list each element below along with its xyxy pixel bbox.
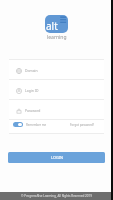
button[interactable]: Remember me — [9, 119, 51, 130]
staticText: alt — [46, 19, 58, 33]
staticText: Domain — [25, 68, 38, 73]
button[interactable]: Login ID — [9, 80, 104, 100]
button[interactable]: Forgot password? — [67, 120, 104, 130]
button[interactable]: Domain — [9, 60, 104, 80]
staticText: LOGIN — [51, 155, 63, 160]
staticText: Login ID — [25, 88, 39, 93]
staticText: learning — [47, 34, 67, 41]
staticText: Password — [25, 108, 41, 113]
button[interactable]: LOGIN — [8, 152, 105, 163]
staticText: Remember me — [26, 123, 47, 127]
staticText: © ProgressRise Learning, All Rights Rese… — [21, 194, 92, 198]
button[interactable]: Password — [9, 100, 104, 120]
